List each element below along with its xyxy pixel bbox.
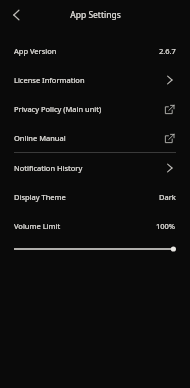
button[interactable]: Volume Limit: [0, 211, 190, 240]
staticText: 2.6.7: [159, 46, 176, 56]
staticText: Notification History: [14, 163, 83, 173]
button[interactable]: Notification History: [0, 153, 190, 182]
button[interactable]: Privacy Policy (Main unit): [0, 94, 190, 123]
button[interactable]: App Version: [0, 36, 190, 65]
staticText: App Version: [14, 46, 57, 56]
staticText: Volume Limit: [14, 221, 61, 231]
staticText: App Settings: [70, 9, 121, 21]
staticText: Display Theme: [14, 192, 66, 202]
staticText: License Information: [14, 75, 85, 85]
button[interactable]: Back: [7, 5, 27, 25]
staticText: 100%: [156, 221, 176, 231]
staticText: Online Manual: [14, 133, 66, 143]
button[interactable]: Display Theme: [0, 182, 190, 211]
button[interactable]: Online Manual: [0, 123, 190, 152]
button[interactable]: License Information: [0, 65, 190, 94]
staticText: Dark: [159, 192, 176, 202]
button[interactable]: Volume limit slider: [0, 240, 190, 258]
staticText: Privacy Policy (Main unit): [14, 104, 102, 114]
